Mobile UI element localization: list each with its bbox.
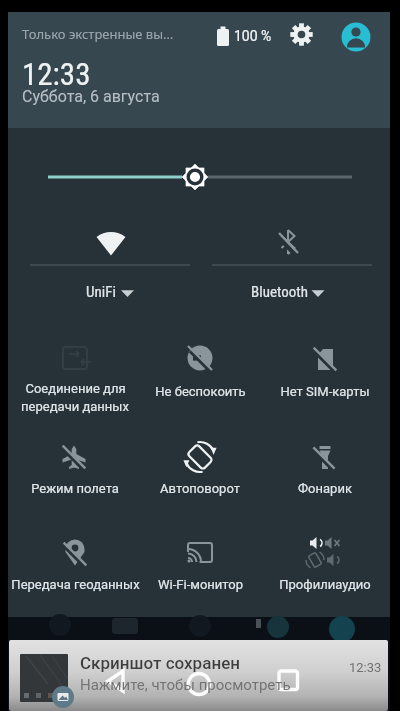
button[interactable] [98,666,132,700]
staticText: передачи данных [21,399,129,414]
button[interactable] [340,20,374,54]
button[interactable] [270,530,382,600]
staticText: Скриншот сохранен [80,653,241,673]
button[interactable] [20,435,132,505]
button[interactable] [145,335,257,405]
staticText: 12:33 [22,56,91,92]
button[interactable] [286,14,316,44]
staticText: Профилиаудио [279,577,371,592]
button[interactable] [145,530,257,600]
button[interactable] [20,530,132,600]
button[interactable] [236,220,340,310]
staticText: Режим полета [31,481,119,496]
button[interactable] [270,335,382,405]
staticText: Автоповорот [160,481,240,496]
button[interactable] [145,435,257,505]
button[interactable] [60,220,164,310]
staticText: Фонарик [298,481,352,496]
staticText: 100 % [234,28,272,44]
staticText: Нет SIM-карты [280,384,370,399]
staticText: 12:33 [349,660,382,675]
staticText: Суббота, 6 августа [22,87,160,106]
staticText: Нажмите, чтобы просмотреть [80,676,291,694]
staticText: Соединение для [25,381,126,396]
staticText: UniFi [86,283,116,301]
staticText: Wi-Fi-монитор [158,577,243,592]
button[interactable] [20,335,132,417]
staticText: Не беспокоить [155,384,246,399]
button[interactable] [270,435,382,505]
button[interactable] [271,664,305,698]
staticText: Передача геоданных [11,577,140,592]
button[interactable] [9,640,388,711]
button[interactable] [182,666,216,700]
staticText: Bluetooth [251,283,308,301]
staticText: Только экстренные вы… [22,25,174,43]
